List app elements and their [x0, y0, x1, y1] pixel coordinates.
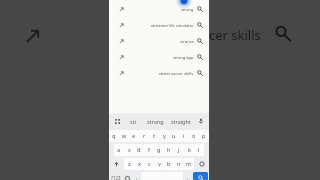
staticText: cer skills [209, 26, 261, 44]
button[interactable]: o [189, 130, 199, 142]
button[interactable]: m [184, 158, 194, 170]
button[interactable]: strong app [109, 49, 209, 65]
button[interactable]: l [194, 144, 204, 156]
button[interactable]: u [169, 130, 179, 142]
button[interactable]: Toolbar [113, 117, 121, 125]
staticText: i [183, 132, 185, 140]
staticText: streamer life simulator [151, 23, 194, 28]
button[interactable]: p [199, 130, 209, 142]
staticText: b [167, 160, 171, 168]
button[interactable]: street soccer skills [109, 65, 209, 81]
button[interactable]: j [174, 144, 184, 156]
button[interactable]: w [119, 130, 129, 142]
button[interactable]: strong [147, 118, 164, 125]
staticText: m [186, 160, 192, 168]
staticText: a [117, 146, 121, 154]
staticText: o [192, 132, 196, 140]
button[interactable]: g [154, 144, 164, 156]
staticText: street soccer skills [159, 71, 194, 76]
staticText: j [178, 146, 180, 154]
button[interactable]: n [174, 158, 184, 170]
staticText: e [132, 132, 136, 140]
staticText: u [172, 132, 176, 140]
staticText: z [128, 160, 131, 168]
button[interactable]: strance [109, 33, 209, 49]
staticText: ?123 [111, 175, 121, 180]
staticText: k [188, 146, 191, 154]
staticText: p [202, 132, 206, 140]
staticText: strong [181, 7, 194, 12]
staticText: c [148, 160, 151, 168]
staticText: t [153, 132, 156, 140]
button[interactable]: e [129, 130, 139, 142]
button[interactable]: i [179, 130, 189, 142]
button[interactable]: x [134, 158, 144, 170]
button[interactable]: z [124, 158, 134, 170]
button[interactable]: Backspace [194, 157, 209, 171]
button[interactable]: v [154, 158, 164, 170]
staticText: h [167, 146, 171, 154]
staticText: strance [180, 39, 194, 44]
button[interactable]: ?123 [109, 171, 123, 180]
staticText: f [148, 146, 150, 154]
button[interactable]: a [114, 144, 124, 156]
button[interactable]: sti [130, 118, 136, 125]
button[interactable]: q [109, 130, 119, 142]
button[interactable]: , [132, 171, 141, 180]
button[interactable]: h [164, 144, 174, 156]
staticText: y [163, 132, 166, 140]
staticText: , [136, 174, 138, 180]
button[interactable]: f [144, 144, 154, 156]
staticText: q [112, 132, 116, 140]
button[interactable]: s [124, 144, 134, 156]
staticText: r [143, 132, 146, 140]
button[interactable]: straight [171, 118, 191, 125]
staticText: strong app [173, 55, 194, 60]
staticText: n [177, 160, 181, 168]
staticText: g [157, 146, 161, 154]
button[interactable]: strong [109, 1, 209, 17]
staticText: v [158, 160, 161, 168]
button[interactable]: k [184, 144, 194, 156]
button[interactable]: streamer life simulator [109, 17, 209, 33]
button[interactable]: r [139, 130, 149, 142]
button[interactable]: Shift [109, 157, 124, 171]
staticText: . [187, 174, 189, 180]
button[interactable]: b [164, 158, 174, 170]
button[interactable]: Search [193, 172, 208, 180]
button[interactable]: . [183, 171, 192, 180]
button[interactable]: c [144, 158, 154, 170]
staticText: l [198, 146, 200, 154]
staticText: x [138, 160, 141, 168]
staticText: s [128, 146, 131, 154]
button[interactable]: t [149, 130, 159, 142]
button[interactable]: Emoji [123, 171, 132, 180]
button[interactable]: Voice input [197, 117, 205, 125]
staticText: d [137, 146, 141, 154]
button[interactable]: y [159, 130, 169, 142]
staticText: w [122, 132, 127, 140]
button[interactable]: d [134, 144, 144, 156]
